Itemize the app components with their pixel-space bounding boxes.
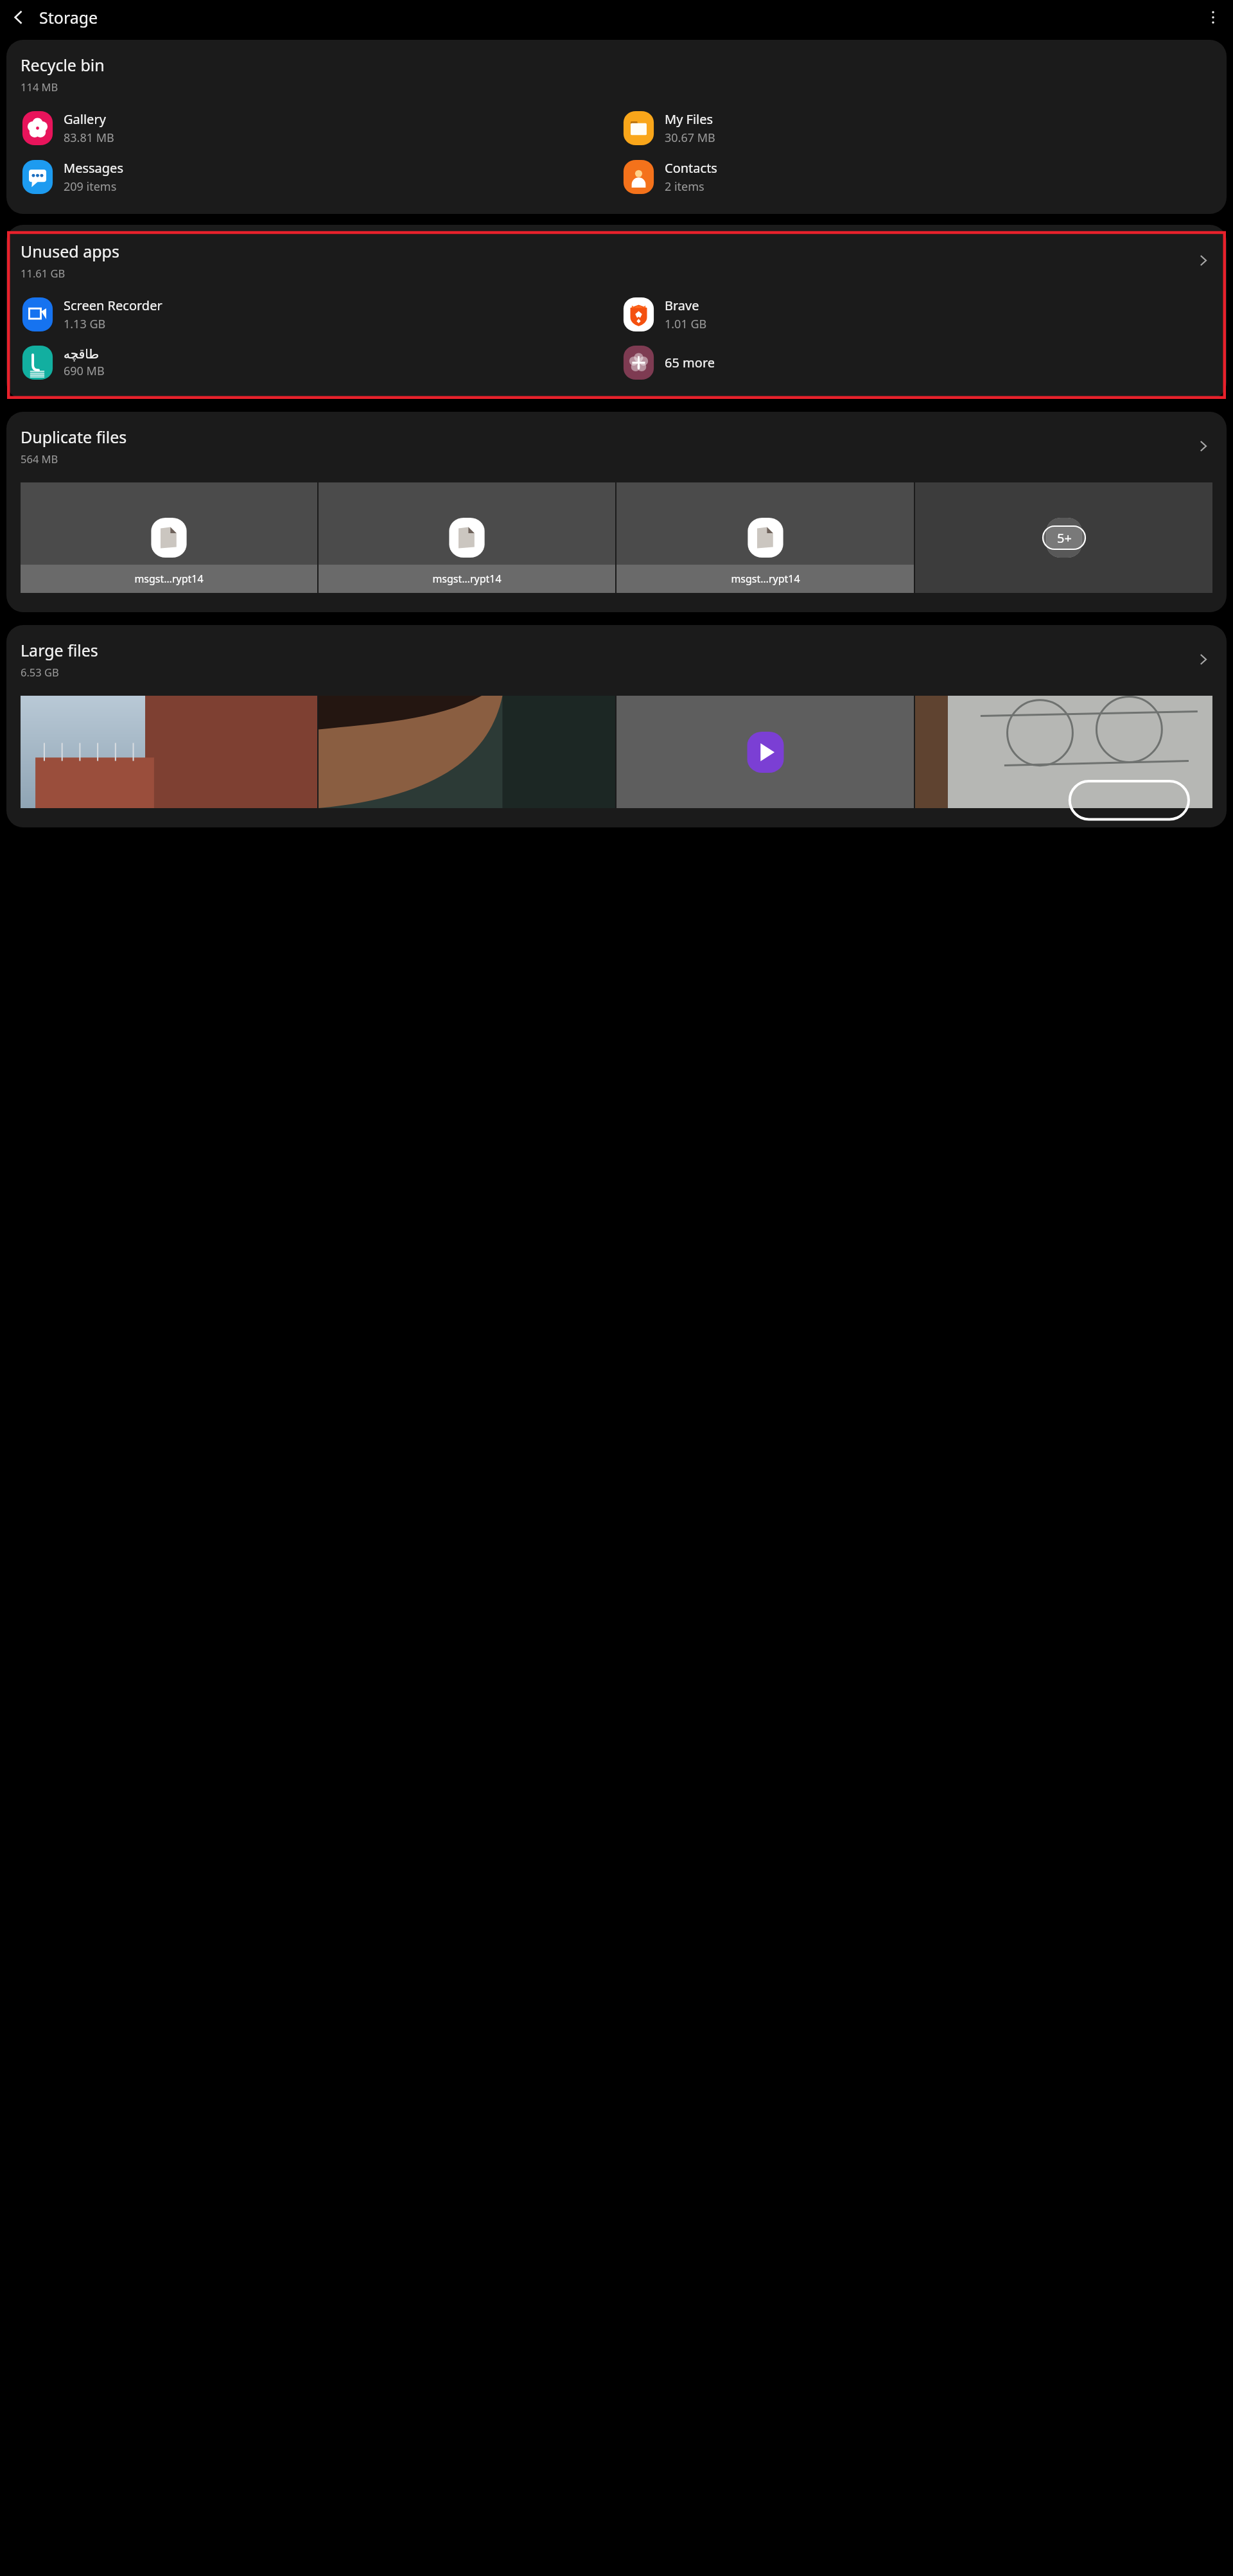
button[interactable]: طاقچه — [21, 346, 616, 380]
button[interactable]: Contacts — [622, 159, 1227, 195]
button[interactable] — [319, 696, 615, 808]
staticText: msgst…rypt14 — [432, 572, 502, 586]
staticText: 209 items — [64, 179, 117, 195]
button[interactable]: 65 more — [622, 346, 1227, 380]
staticText: 30.67 MB — [665, 130, 715, 146]
staticText: 83.81 MB — [64, 130, 114, 146]
button[interactable]: Brave — [622, 297, 1227, 332]
button[interactable]: Unused apps — [6, 225, 1227, 399]
staticText: Brave — [665, 297, 699, 314]
staticText: 114 MB — [21, 80, 58, 94]
button[interactable] — [21, 696, 317, 808]
staticText: 11.61 GB — [21, 266, 66, 280]
staticText: 1.13 GB — [64, 316, 106, 332]
button[interactable]: Large files — [6, 625, 1227, 827]
staticText: 5+ — [1057, 529, 1072, 547]
staticText: 690 MB — [64, 363, 105, 379]
staticText: Messages — [64, 159, 123, 177]
staticText: 6.53 GB — [21, 665, 59, 679]
staticText: Duplicate files — [21, 426, 127, 448]
staticText: 564 MB — [21, 452, 58, 466]
button[interactable]: msgst…rypt14 — [616, 482, 914, 593]
staticText: Unused apps — [21, 240, 119, 262]
button[interactable]: Duplicate files — [6, 412, 1227, 612]
staticText: Gallery — [64, 110, 106, 128]
button[interactable]: Back — [4, 2, 35, 33]
staticText: msgst…rypt14 — [731, 572, 800, 586]
button[interactable]: More options — [1198, 2, 1229, 33]
button[interactable]: Screen Recorder — [21, 297, 616, 332]
staticText: 2 items — [665, 179, 704, 195]
staticText: Large files — [21, 639, 98, 661]
button[interactable]: Recycle bin — [6, 40, 1227, 214]
button[interactable]: 5+ — [915, 482, 1212, 593]
staticText: Contacts — [665, 159, 717, 177]
staticText: My Files — [665, 110, 713, 128]
button[interactable]: msgst…rypt14 — [21, 482, 317, 593]
button[interactable] — [915, 696, 1212, 808]
staticText: Screen Recorder — [64, 297, 162, 314]
staticText: 65 more — [665, 354, 715, 371]
staticText: طاقچه — [64, 346, 100, 361]
button[interactable]: My Files — [622, 110, 1227, 146]
button[interactable]: msgst…rypt14 — [319, 482, 615, 593]
staticText: msgst…rypt14 — [134, 572, 204, 586]
staticText: Storage — [39, 6, 98, 28]
button[interactable]: Messages — [21, 159, 616, 195]
button[interactable]: Gallery — [21, 110, 616, 146]
staticText: 1.01 GB — [665, 316, 707, 332]
button[interactable] — [616, 696, 914, 808]
staticText: Recycle bin — [21, 54, 105, 76]
